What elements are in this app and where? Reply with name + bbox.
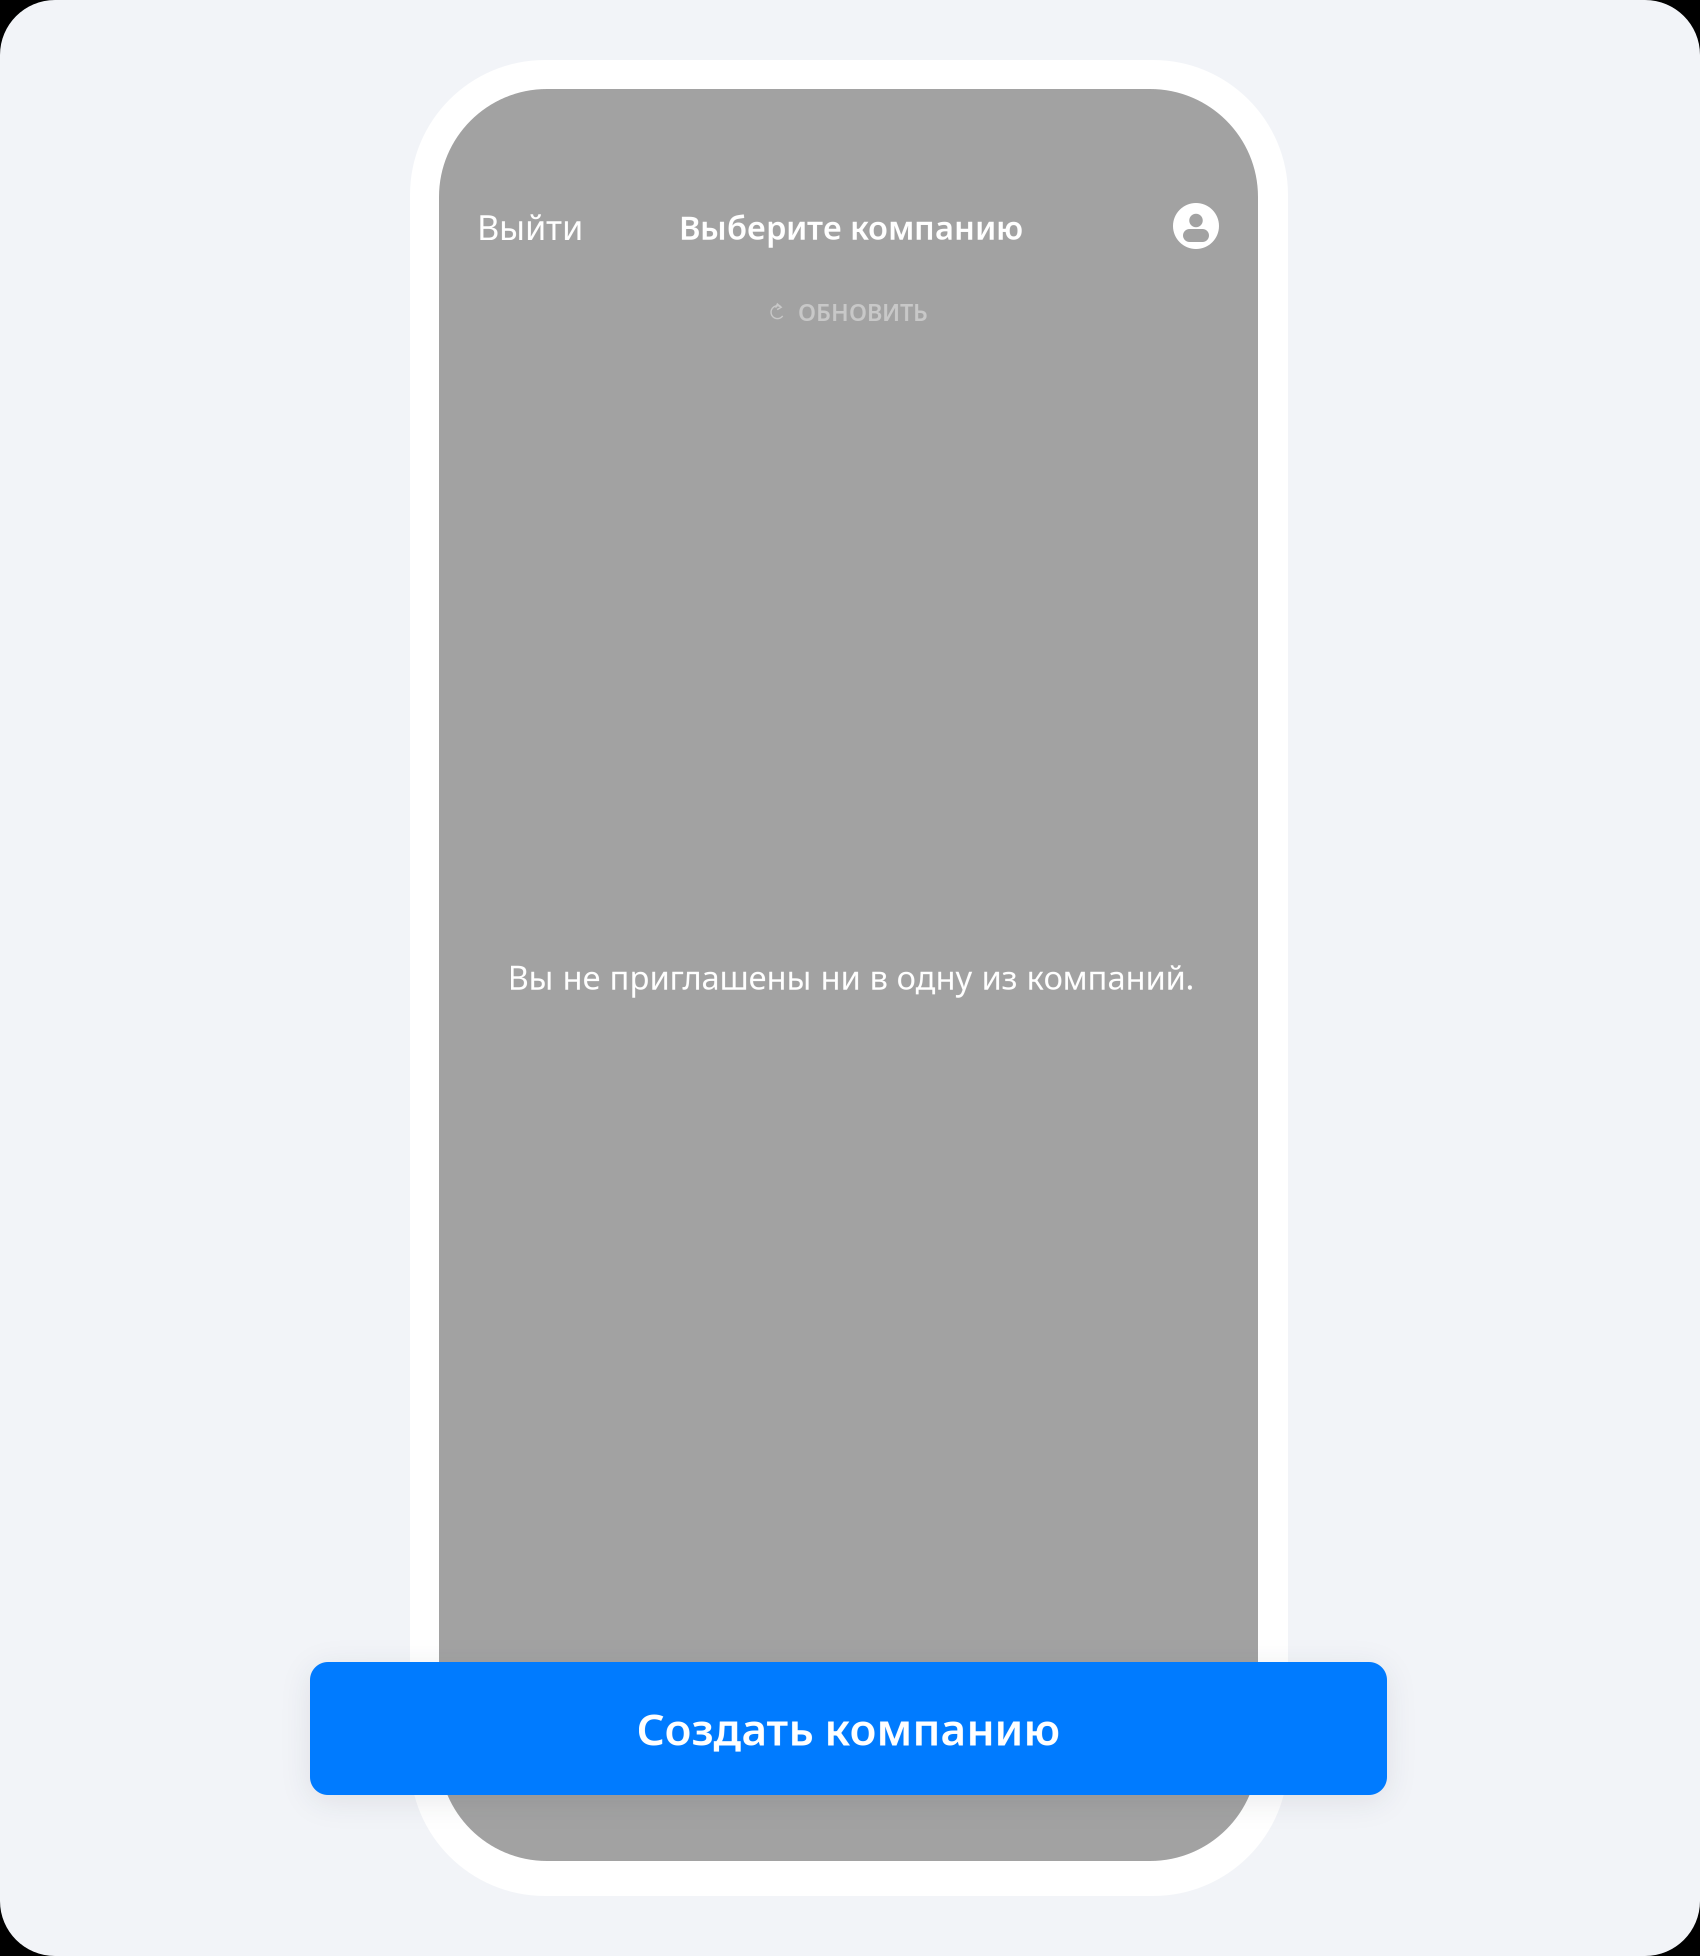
staticText: Создать компанию — [636, 1698, 1060, 1758]
staticText: Вы не приглашены ни в одну из компаний. — [507, 955, 1194, 999]
staticText: ОБНОВИТЬ — [798, 296, 928, 328]
button[interactable]: Профиль — [1164, 194, 1228, 258]
staticText: Выберите компанию — [679, 205, 1023, 249]
button[interactable]: ОБНОВИТЬ — [754, 284, 942, 340]
button[interactable]: Создать компанию — [310, 1662, 1387, 1795]
button[interactable]: Выйти — [459, 188, 601, 266]
staticText: Выйти — [477, 204, 583, 250]
button[interactable]: Выберите компанию — [667, 191, 1035, 263]
